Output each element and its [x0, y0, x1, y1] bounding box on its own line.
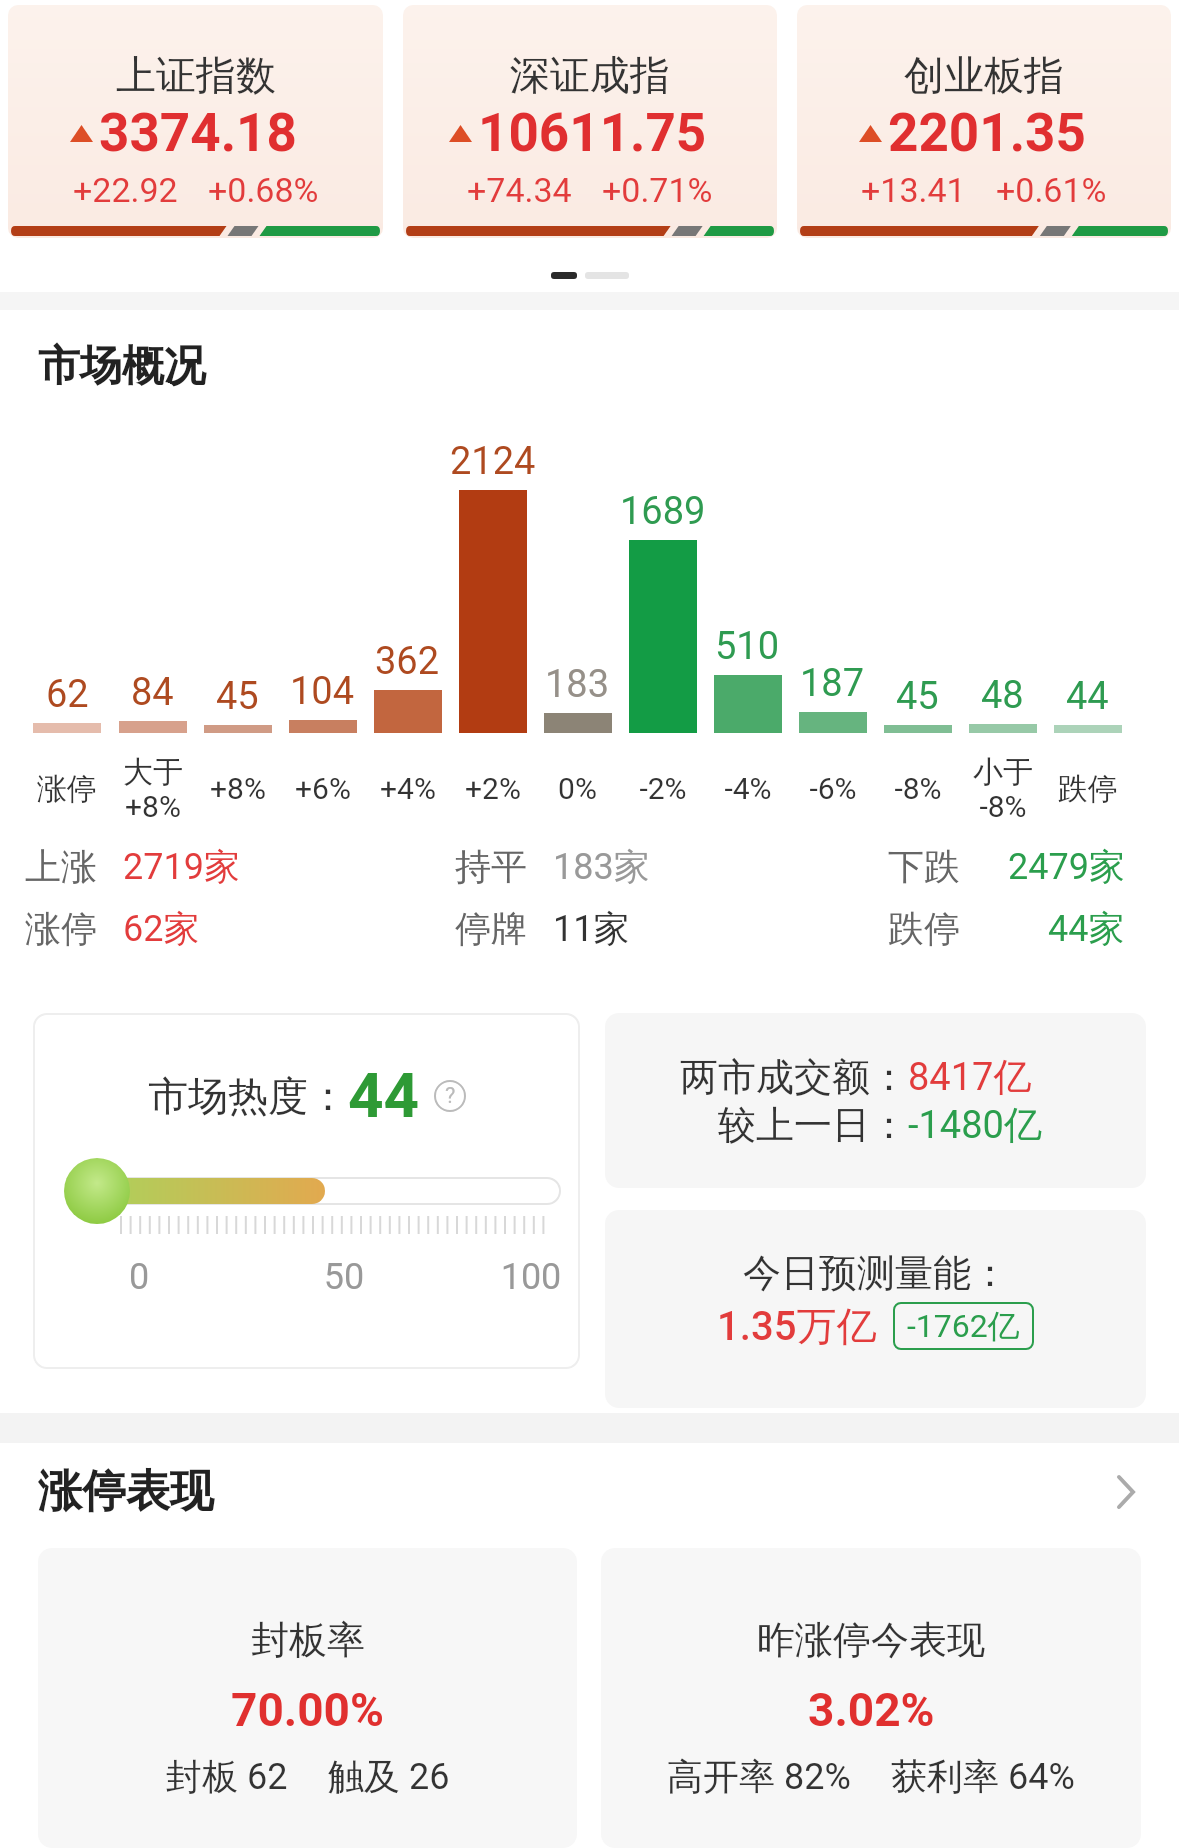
staticText: +13.41: [861, 170, 966, 210]
staticText: 市场概况: [38, 340, 206, 393]
staticText: +0.61%: [996, 170, 1107, 210]
staticText: 获利率 64%: [891, 1754, 1075, 1799]
staticText: 45: [896, 674, 939, 719]
staticText: 183家: [553, 844, 650, 889]
staticText: 70.00%: [231, 1683, 384, 1737]
staticText: ?: [445, 1083, 456, 1109]
staticText: 0: [109, 1256, 169, 1298]
staticText: +0.71%: [602, 170, 713, 210]
staticText: 104: [290, 669, 355, 714]
staticText: 187: [800, 661, 865, 706]
staticText: 0%: [558, 771, 597, 806]
staticText: 持平: [455, 844, 527, 889]
staticText: 2479家: [1008, 844, 1125, 889]
staticText: 封板 62: [166, 1754, 288, 1799]
staticText: 1.35万亿: [717, 1301, 877, 1351]
staticText: 50: [314, 1256, 374, 1298]
staticText: 8417亿: [908, 1053, 1058, 1101]
staticText: 362: [375, 639, 440, 684]
staticText: 涨停: [37, 770, 97, 808]
staticText: +4%: [380, 771, 436, 806]
staticText: -2%: [639, 771, 687, 806]
staticText: 510: [715, 624, 780, 669]
staticText: 高开率 82%: [667, 1754, 851, 1799]
staticText: 大于 +8%: [123, 753, 183, 824]
staticText: 2124: [450, 439, 536, 484]
staticText: 两市成交额：: [680, 1053, 908, 1101]
staticText: 48: [981, 673, 1024, 718]
staticText: +6%: [295, 771, 351, 806]
staticText: -1762亿: [907, 1306, 1020, 1346]
staticText: 44家: [1048, 906, 1125, 951]
staticText: 跌停: [888, 906, 960, 951]
staticText: 1689: [620, 489, 706, 534]
staticText: 上证指数: [116, 50, 276, 100]
staticText: 3374.18: [99, 102, 297, 164]
staticText: +22.92: [73, 170, 178, 210]
staticText: 今日预测量能：: [743, 1249, 1009, 1297]
staticText: 涨停: [25, 906, 97, 951]
staticText: 2719家: [123, 844, 240, 889]
staticText: 183: [545, 662, 610, 707]
staticText: 100: [491, 1256, 571, 1298]
staticText: 涨停表现: [38, 1464, 214, 1519]
staticText: 市场热度：: [148, 1071, 348, 1121]
staticText: -1480亿: [908, 1101, 1058, 1149]
staticText: +2%: [465, 771, 521, 806]
staticText: +8%: [210, 771, 266, 806]
staticText: 3.02%: [808, 1683, 935, 1737]
staticText: 2201.35: [888, 102, 1086, 164]
staticText: 44: [1066, 674, 1109, 719]
staticText: -8%: [894, 771, 942, 806]
staticText: 44: [348, 1059, 420, 1132]
staticText: 跌停: [1058, 770, 1118, 808]
staticText: 较上一日：: [718, 1101, 908, 1149]
staticText: 触及 26: [328, 1754, 450, 1799]
staticText: 45: [216, 674, 259, 719]
staticText: 62: [46, 672, 89, 717]
staticText: 11家: [553, 906, 630, 951]
staticText: -4%: [724, 771, 772, 806]
staticText: 深证成指: [510, 50, 670, 100]
staticText: 昨涨停今表现: [757, 1616, 985, 1664]
staticText: 62家: [123, 906, 200, 951]
staticText: 下跌: [888, 844, 960, 889]
staticText: 小于 -8%: [973, 753, 1033, 824]
staticText: -6%: [809, 771, 857, 806]
staticText: 创业板指: [904, 50, 1064, 100]
staticText: 停牌: [455, 906, 527, 951]
staticText: 84: [131, 670, 174, 715]
staticText: +0.68%: [208, 170, 319, 210]
staticText: 封板率: [251, 1616, 365, 1664]
staticText: 10611.75: [478, 102, 707, 164]
staticText: 上涨: [25, 844, 97, 889]
staticText: +74.34: [467, 170, 572, 210]
